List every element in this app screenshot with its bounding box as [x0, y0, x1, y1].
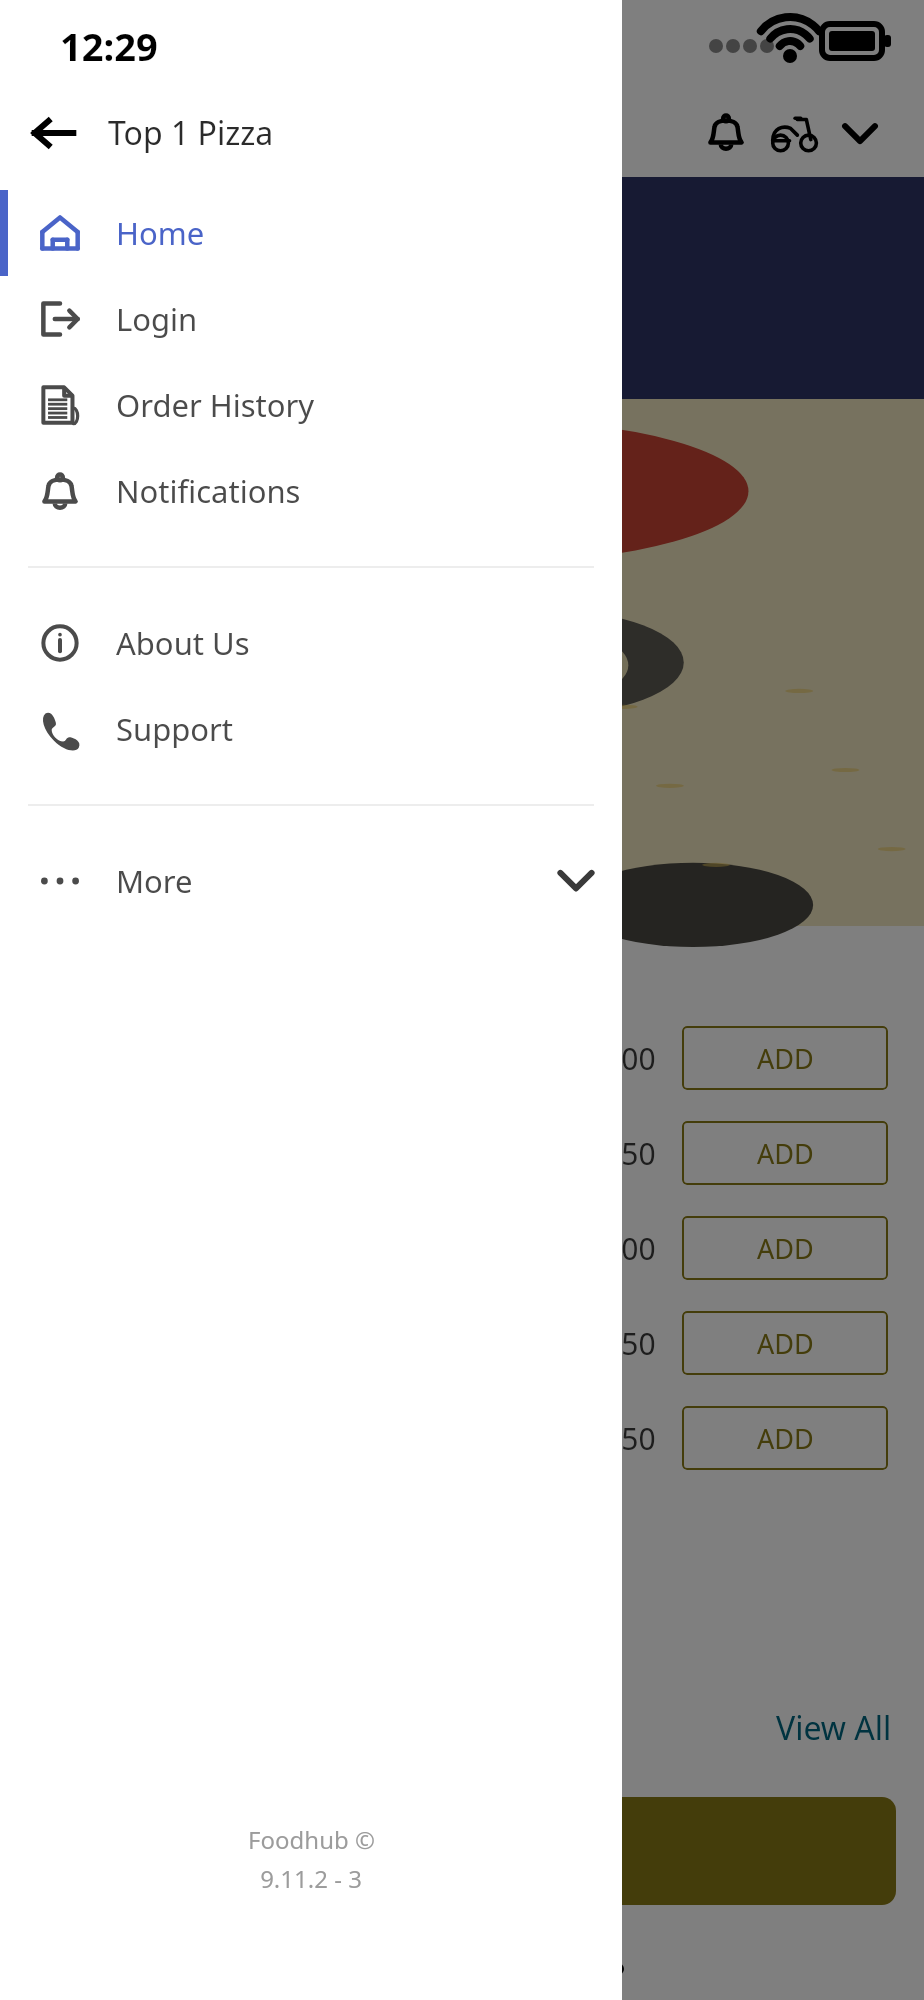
staticText: £6.00	[579, 1228, 656, 1269]
button[interactable]: Support	[0, 686, 622, 772]
staticText: ADD	[757, 1230, 814, 1267]
button[interactable]: Login	[0, 276, 622, 362]
button[interactable]: ADD	[682, 1311, 888, 1375]
staticText: ADD	[757, 1040, 814, 1077]
button[interactable]: View All	[768, 1698, 900, 1758]
staticText: Foodhub ©	[248, 1823, 375, 1856]
staticText: Top 1 Pizza	[108, 111, 274, 155]
button[interactable]: About Us	[0, 600, 622, 686]
staticText: 9.11.2 - 3	[260, 1862, 362, 1895]
button[interactable]: Delivery options	[766, 106, 822, 162]
staticText: 12:29	[60, 20, 158, 72]
staticText: Home	[116, 212, 205, 254]
button[interactable]: Start Your Order	[36, 1797, 896, 1905]
staticText: Login	[116, 298, 198, 340]
staticText: £6.50	[579, 1323, 656, 1364]
staticText: £9.00	[579, 1038, 656, 1079]
button[interactable]: ADD	[682, 1026, 888, 1090]
button[interactable]: ADD	[682, 1216, 888, 1280]
staticText: £8.50	[579, 1133, 656, 1174]
staticText: Support	[116, 708, 234, 750]
staticText: ADD	[757, 1135, 814, 1172]
staticText: Order History	[116, 384, 315, 426]
staticText: Notifications	[116, 470, 301, 512]
button[interactable]: Notifications	[700, 106, 752, 158]
staticText: More	[116, 860, 550, 902]
staticText: Start Your Order	[345, 1830, 588, 1872]
button[interactable]: Order History	[0, 362, 622, 448]
button[interactable]: Home	[0, 190, 622, 276]
staticText: This store is closed and will open	[40, 205, 534, 247]
staticText: View All	[776, 1706, 892, 1750]
button[interactable]: ADD	[682, 1121, 888, 1185]
button[interactable]: Back	[0, 104, 108, 162]
staticText: About Us	[116, 622, 250, 664]
button[interactable]: Expand	[838, 112, 882, 156]
staticText: ADD	[757, 1325, 814, 1362]
staticText: £7.50	[579, 1418, 656, 1459]
staticText: at 16:30. You can order now for	[40, 261, 508, 303]
button[interactable]: Notifications	[0, 448, 622, 534]
button[interactable]: More	[0, 838, 622, 924]
staticText: ADD	[757, 1420, 814, 1457]
button[interactable]: ADD	[682, 1406, 888, 1470]
